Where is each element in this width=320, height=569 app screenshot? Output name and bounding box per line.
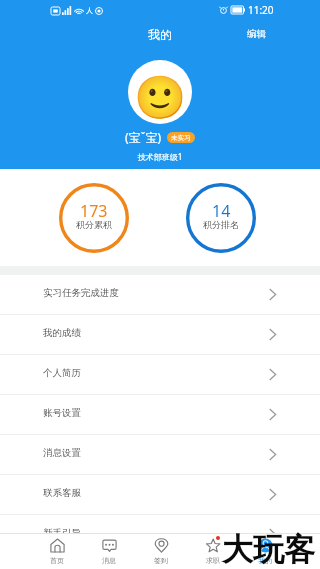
- staticText: 新手引导: [43, 527, 81, 539]
- staticText: 个人简历: [43, 367, 81, 379]
- staticText: 消息设置: [43, 447, 81, 459]
- staticText: 编辑: [247, 28, 266, 40]
- staticText: 我的成绩: [43, 327, 81, 339]
- staticText: 🙂: [134, 73, 187, 122]
- button[interactable]: 我的: [239, 534, 291, 569]
- staticText: 人: [86, 6, 93, 15]
- staticText: 实习任务完成进度: [43, 287, 119, 299]
- staticText: 我的: [148, 27, 172, 42]
- staticText: 首页: [50, 556, 64, 565]
- button[interactable]: 新手引导: [0, 514, 320, 554]
- staticText: 173: [80, 200, 108, 222]
- staticText: 技术部班级1: [0, 151, 320, 162]
- button[interactable]: 编辑: [233, 20, 280, 48]
- staticText: 大玩客: [222, 530, 315, 569]
- staticText: 积分排名: [203, 219, 239, 230]
- button[interactable]: 实习任务完成进度: [0, 275, 320, 314]
- staticText: 消息: [102, 556, 116, 565]
- staticText: 积分累积: [76, 219, 112, 230]
- staticText: 未实习: [171, 134, 191, 142]
- button[interactable]: 求职: [187, 534, 239, 569]
- staticText: 14: [212, 200, 231, 222]
- button[interactable]: 我的成绩: [0, 314, 320, 354]
- button[interactable]: 联系客服: [0, 474, 320, 514]
- button[interactable]: 签到: [135, 534, 187, 569]
- button[interactable]: 消息设置: [0, 434, 320, 474]
- staticText: 联系客服: [43, 487, 81, 499]
- staticText: (宝ˇ宝): [125, 129, 162, 145]
- staticText: 签到: [154, 556, 168, 565]
- staticText: 求职: [206, 556, 220, 565]
- staticText: 我的: [258, 556, 272, 565]
- button[interactable]: 个人简历: [0, 354, 320, 394]
- button[interactable]: 消息: [83, 534, 135, 569]
- staticText: 账号设置: [43, 407, 81, 419]
- staticText: 11:20: [248, 3, 274, 17]
- button[interactable]: 首页: [31, 534, 83, 569]
- button[interactable]: 账号设置: [0, 394, 320, 434]
